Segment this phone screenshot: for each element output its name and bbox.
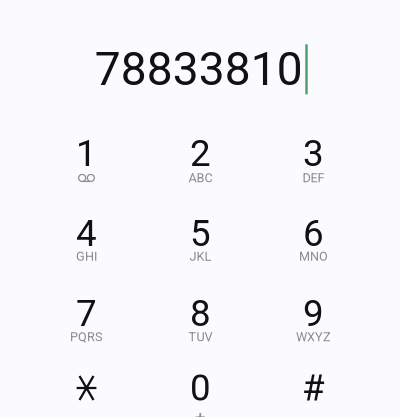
staticText: 3: [303, 132, 324, 175]
staticText: MNO: [299, 249, 328, 264]
button[interactable]: 4: [32, 195, 140, 271]
staticText: 9: [303, 292, 324, 335]
staticText: 6: [303, 212, 324, 255]
staticText: +: [195, 407, 206, 417]
button[interactable]: 3: [259, 115, 367, 191]
staticText: TUV: [188, 330, 212, 344]
staticText: 78833810: [95, 42, 303, 96]
button[interactable]: 78833810: [95, 38, 308, 100]
button[interactable]: [32, 350, 140, 417]
button[interactable]: 6: [259, 195, 367, 271]
button[interactable]: #: [259, 350, 367, 417]
staticText: ABC: [188, 171, 212, 185]
button[interactable]: 7: [32, 275, 140, 351]
staticText: 1: [76, 132, 97, 175]
staticText: WXYZ: [296, 330, 331, 344]
staticText: DEF: [302, 171, 324, 185]
button[interactable]: 1: [32, 115, 140, 191]
staticText: 2: [190, 132, 211, 175]
staticText: JKL: [189, 249, 211, 264]
staticText: PQRS: [70, 330, 103, 344]
staticText: 4: [76, 212, 97, 255]
button[interactable]: 5: [146, 195, 254, 271]
staticText: 8: [190, 292, 211, 335]
button[interactable]: 8: [146, 275, 254, 351]
button[interactable]: 2: [146, 115, 254, 191]
staticText: 5: [190, 212, 211, 255]
button[interactable]: 9: [259, 275, 367, 351]
staticText: GHI: [76, 249, 97, 264]
button[interactable]: 0: [146, 350, 254, 417]
staticText: #: [302, 366, 325, 409]
staticText: 7: [76, 292, 97, 335]
staticText: 0: [190, 366, 211, 409]
